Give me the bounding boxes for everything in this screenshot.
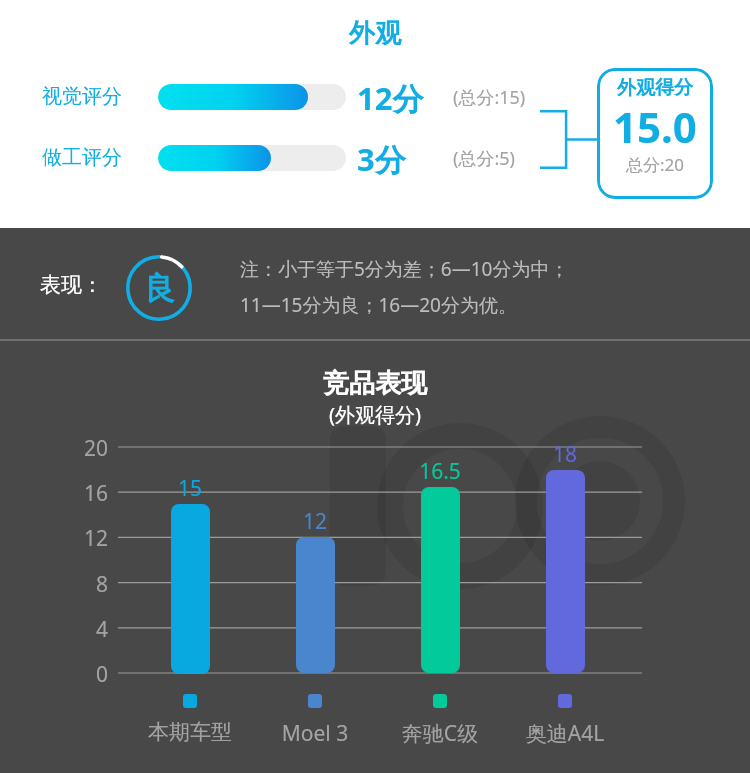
staticText: 3分	[357, 138, 406, 180]
staticText: (总分:15)	[453, 85, 526, 110]
staticText: 15.0	[613, 98, 697, 155]
staticText: 注：小于等于5分为差；6—10分为中；	[240, 256, 569, 282]
staticText: 16.5	[400, 457, 480, 486]
button[interactable]	[421, 487, 460, 673]
button[interactable]	[546, 470, 585, 673]
staticText: 11—15分为良；16—20分为优。	[240, 292, 517, 318]
staticText: 竞品表现	[0, 367, 750, 400]
button[interactable]: 奔驰C级	[370, 719, 510, 748]
staticText: 良	[144, 269, 175, 308]
staticText: 18	[525, 440, 605, 469]
button[interactable]: 表现：良	[125, 254, 193, 322]
staticText: 做工评分	[42, 145, 122, 170]
staticText: (外观得分)	[0, 401, 750, 428]
staticText: 外观	[0, 17, 750, 50]
staticText: (总分:5)	[453, 146, 515, 171]
button[interactable]	[296, 537, 335, 673]
staticText: 0	[78, 660, 108, 689]
button[interactable]	[171, 504, 210, 674]
staticText: 20	[78, 434, 108, 463]
staticText: 视觉评分	[42, 84, 122, 109]
button[interactable]: Moel 3	[245, 719, 385, 748]
staticText: 15	[150, 474, 230, 503]
button[interactable]: 外观得分	[597, 68, 713, 199]
staticText: 12	[275, 507, 355, 536]
staticText: 表现：	[40, 272, 103, 298]
staticText: 4	[78, 615, 108, 644]
staticText: 外观得分	[617, 76, 693, 100]
button[interactable]: 本期车型	[120, 719, 260, 745]
staticText: 总分:20	[626, 153, 685, 176]
staticText: 8	[78, 570, 108, 599]
button[interactable]: 奥迪A4L	[495, 719, 635, 748]
staticText: 12	[78, 524, 108, 553]
staticText: 16	[78, 479, 108, 508]
staticText: 12分	[357, 77, 424, 119]
